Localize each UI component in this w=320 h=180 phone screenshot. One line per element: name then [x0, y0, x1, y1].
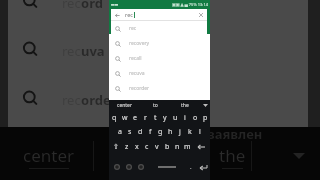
staticText: u	[173, 113, 178, 123]
button[interactable]: Enter	[196, 154, 210, 180]
staticText: uva	[81, 42, 105, 60]
staticText: rec	[62, 42, 81, 60]
staticText: center	[23, 144, 74, 167]
staticText: center	[117, 102, 133, 109]
button[interactable]: center	[4, 139, 92, 173]
staticText: m	[184, 142, 191, 152]
button[interactable]: i	[180, 110, 190, 125]
staticText: i	[184, 113, 186, 123]
staticText: ▣▣ ▲ ▄ 75% 13:14	[172, 2, 208, 7]
staticText: y	[163, 113, 167, 123]
staticText: заявлен	[208, 125, 263, 143]
staticText: ord	[81, 0, 103, 12]
button[interactable]: t	[150, 110, 160, 125]
staticText: order	[81, 91, 117, 109]
staticText: l	[199, 127, 201, 137]
staticText: f	[149, 127, 152, 137]
staticText: rec	[125, 11, 133, 18]
staticText: ▬▬	[111, 2, 119, 7]
staticText: g	[158, 127, 163, 137]
button[interactable]: b	[162, 139, 172, 154]
staticText: x	[135, 142, 139, 152]
button[interactable]: rec	[111, 21, 207, 36]
staticText: b	[165, 142, 170, 152]
button[interactable]: g	[155, 125, 165, 139]
button[interactable]: Back	[113, 11, 121, 19]
staticText: ⇧	[113, 143, 119, 151]
button[interactable]: center	[109, 100, 140, 110]
staticText: the	[219, 144, 246, 167]
button[interactable]: u	[170, 110, 180, 125]
button[interactable]: the	[170, 100, 200, 110]
button[interactable]: o	[190, 110, 200, 125]
button[interactable]: f	[145, 125, 155, 139]
button[interactable]: r	[140, 110, 150, 125]
button[interactable]: Settings	[135, 154, 147, 180]
button[interactable]: More suggestions	[200, 100, 210, 110]
staticText: n	[175, 142, 180, 152]
button[interactable]: l	[195, 125, 205, 139]
button[interactable]: c	[142, 139, 152, 154]
button[interactable]: recall	[111, 51, 207, 66]
button[interactable]: Symbols	[111, 154, 123, 180]
staticText: to	[153, 102, 158, 109]
staticText: w	[122, 113, 128, 123]
staticText: r	[144, 113, 147, 123]
staticText: recorder	[129, 85, 150, 92]
button[interactable]: k	[185, 125, 195, 139]
staticText: a	[118, 127, 122, 137]
button[interactable]: e	[130, 110, 140, 125]
staticText: t	[154, 113, 157, 123]
staticText: v	[155, 142, 159, 152]
button[interactable]: a	[115, 125, 125, 139]
button[interactable]: recorder	[111, 81, 207, 96]
staticText: recovery	[129, 40, 150, 47]
button[interactable]: the	[209, 139, 255, 173]
staticText: rec	[62, 0, 81, 12]
staticText: the	[181, 102, 189, 109]
staticText: j	[179, 127, 181, 137]
staticText: p	[203, 113, 208, 123]
staticText: .	[190, 163, 192, 171]
button[interactable]: p	[200, 110, 210, 125]
button[interactable]: to	[140, 100, 170, 110]
staticText: o	[193, 113, 198, 123]
button[interactable]: d	[135, 125, 145, 139]
button[interactable]: n	[172, 139, 182, 154]
staticText: recall	[129, 55, 142, 62]
button[interactable]: Clear query	[197, 11, 205, 19]
staticText: s	[128, 127, 132, 137]
button[interactable]: z	[122, 139, 132, 154]
button[interactable]: Expand suggestions	[282, 141, 316, 171]
button[interactable]: v	[152, 139, 162, 154]
button[interactable]: rec	[8, 0, 308, 24]
button[interactable]: rec	[8, 77, 308, 121]
button[interactable]: Shift	[109, 139, 122, 154]
button[interactable]: y	[160, 110, 170, 125]
staticText: recuva	[129, 70, 145, 77]
button[interactable]	[147, 154, 186, 180]
button[interactable]: q	[109, 110, 120, 125]
button[interactable]: Backspace	[192, 139, 210, 154]
staticText: q	[112, 113, 117, 123]
button[interactable]: m	[182, 139, 192, 154]
staticText: z	[125, 142, 129, 152]
button[interactable]: recuva	[111, 66, 207, 81]
button[interactable]: x	[132, 139, 142, 154]
button[interactable]: rec	[8, 28, 308, 72]
staticText: d	[138, 127, 143, 137]
button[interactable]: Emoji	[123, 154, 135, 180]
staticText: rec	[129, 25, 137, 32]
staticText: c	[145, 142, 149, 152]
button[interactable]: s	[125, 125, 135, 139]
staticText: h	[168, 127, 173, 137]
button[interactable]: w	[120, 110, 130, 125]
button[interactable]: j	[175, 125, 185, 139]
button[interactable]: h	[165, 125, 175, 139]
button[interactable]: recovery	[111, 36, 207, 51]
staticText: k	[188, 127, 192, 137]
button[interactable]: .	[186, 154, 196, 180]
staticText: rec	[62, 91, 81, 109]
staticText: e	[133, 113, 137, 123]
